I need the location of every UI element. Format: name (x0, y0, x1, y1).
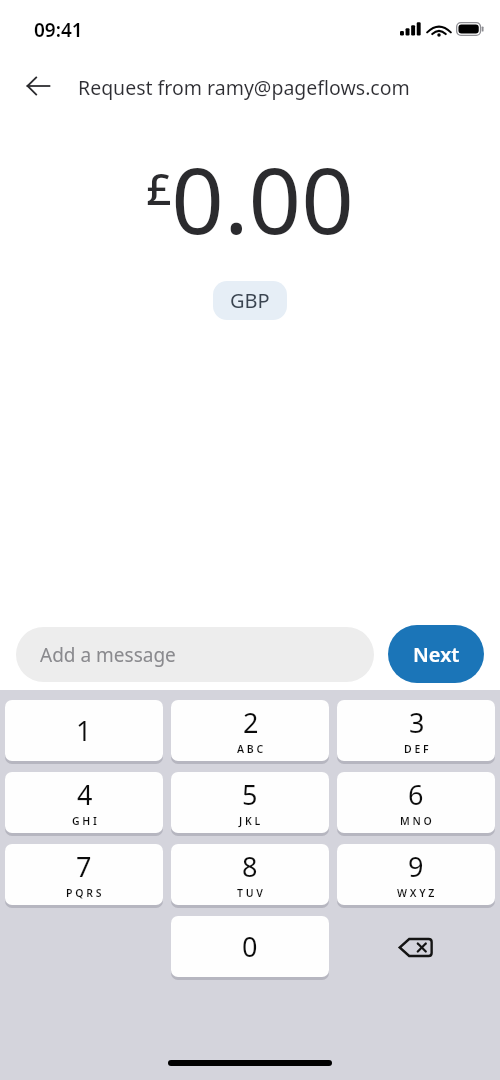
staticText: G H I (72, 814, 97, 828)
staticText: 7 (76, 848, 92, 885)
button[interactable]: Next (388, 625, 484, 683)
staticText: Request from ramy@pageflows.com (78, 74, 410, 101)
button[interactable]: Back (14, 62, 62, 110)
staticText: 8 (242, 848, 258, 885)
staticText: Next (413, 641, 460, 668)
staticText: 3 (409, 704, 425, 741)
staticText: GBP (230, 287, 270, 314)
button[interactable]: 3 (337, 700, 495, 761)
button[interactable]: 1 (5, 700, 163, 761)
button[interactable]: 7 (5, 844, 163, 905)
staticText: 6 (408, 776, 424, 813)
button[interactable]: GBP (213, 281, 287, 320)
button[interactable]: Add a message (16, 627, 374, 682)
staticText: Add a message (40, 642, 176, 668)
staticText: P Q R S (66, 886, 102, 900)
button[interactable]: Delete (337, 916, 495, 978)
button[interactable]: 2 (171, 700, 329, 761)
staticText: 0 (242, 928, 258, 965)
staticText: 9 (408, 848, 424, 885)
staticText: W X Y Z (397, 886, 435, 900)
staticText: J K L (239, 814, 261, 828)
button[interactable]: 5 (171, 772, 329, 833)
staticText: 2 (243, 704, 259, 741)
button[interactable]: 0 (171, 916, 329, 977)
staticText: M N O (400, 814, 432, 828)
staticText: 5 (242, 776, 258, 813)
staticText: £0.00 (146, 136, 354, 261)
staticText: 1 (76, 712, 92, 749)
staticText: 09:41 (34, 17, 83, 43)
button[interactable]: 8 (171, 844, 329, 905)
staticText: 4 (77, 776, 93, 813)
staticText: A B C (237, 742, 264, 756)
button[interactable]: 9 (337, 844, 495, 905)
staticText: T U V (237, 886, 263, 900)
button[interactable]: 4 (5, 772, 163, 833)
staticText: D E F (404, 742, 429, 756)
button[interactable]: 6 (337, 772, 495, 833)
